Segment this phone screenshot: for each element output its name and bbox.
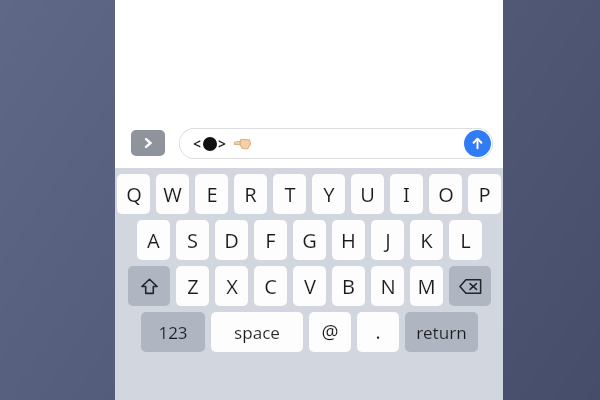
button[interactable]: Expand [131, 130, 165, 156]
staticText: H [341, 227, 356, 254]
button[interactable]: . [357, 312, 399, 352]
staticText: T [284, 181, 296, 208]
staticText: N [380, 273, 396, 300]
staticText: X [226, 273, 238, 300]
button[interactable]: E [195, 174, 228, 214]
staticText: K [420, 227, 433, 254]
button[interactable]: Send [464, 130, 491, 157]
button[interactable]: U [351, 174, 384, 214]
button[interactable]: F [254, 220, 287, 260]
button[interactable]: T [273, 174, 306, 214]
staticText: W [163, 181, 182, 208]
button[interactable]: P [468, 174, 501, 214]
button[interactable]: Backspace [449, 266, 491, 306]
staticText: return [416, 321, 467, 344]
button[interactable]: N [371, 266, 404, 306]
button[interactable]: @ [309, 312, 351, 352]
staticText: M [417, 273, 436, 300]
button[interactable]: W [156, 174, 189, 214]
staticText: A [147, 227, 160, 254]
button[interactable]: S [176, 220, 209, 260]
button[interactable]: 123 [141, 312, 205, 352]
staticText: L [460, 227, 471, 254]
staticText: U [360, 181, 375, 208]
staticText: O [438, 181, 454, 208]
staticText: E [206, 181, 218, 208]
staticText: 123 [158, 321, 188, 344]
button[interactable]: L [449, 220, 482, 260]
staticText: J [385, 227, 391, 254]
staticText: C [264, 273, 277, 300]
button[interactable]: D [215, 220, 248, 260]
button[interactable]: V [293, 266, 326, 306]
button[interactable]: H [332, 220, 365, 260]
staticText: . [375, 319, 381, 345]
button[interactable]: R [234, 174, 267, 214]
staticText: Y [323, 181, 335, 208]
staticText: < [193, 134, 202, 153]
button[interactable]: I [390, 174, 423, 214]
staticText: I [403, 181, 410, 208]
staticText: S [187, 227, 198, 254]
button[interactable]: Z [176, 266, 209, 306]
button[interactable]: Shift [128, 266, 170, 306]
staticText: G [302, 227, 317, 254]
button[interactable]: Q [117, 174, 150, 214]
button[interactable]: O [429, 174, 462, 214]
staticText: > [218, 134, 227, 153]
staticText: F [265, 227, 276, 254]
staticText: @ [321, 319, 339, 345]
button[interactable]: J [371, 220, 404, 260]
staticText: Q [126, 181, 142, 208]
staticText: Z [187, 273, 199, 300]
staticText: V [304, 273, 316, 300]
staticText: R [244, 181, 257, 208]
staticText: space [234, 321, 280, 344]
button[interactable]: B [332, 266, 365, 306]
button[interactable]: < [179, 128, 493, 159]
button[interactable]: Y [312, 174, 345, 214]
button[interactable]: return [405, 312, 478, 352]
button[interactable]: A [137, 220, 170, 260]
staticText: B [342, 273, 355, 300]
button[interactable]: M [410, 266, 443, 306]
button[interactable]: K [410, 220, 443, 260]
staticText: D [224, 227, 239, 254]
staticText: P [478, 181, 491, 208]
button[interactable]: space [211, 312, 303, 352]
button[interactable]: G [293, 220, 326, 260]
button[interactable]: X [215, 266, 248, 306]
button[interactable]: C [254, 266, 287, 306]
